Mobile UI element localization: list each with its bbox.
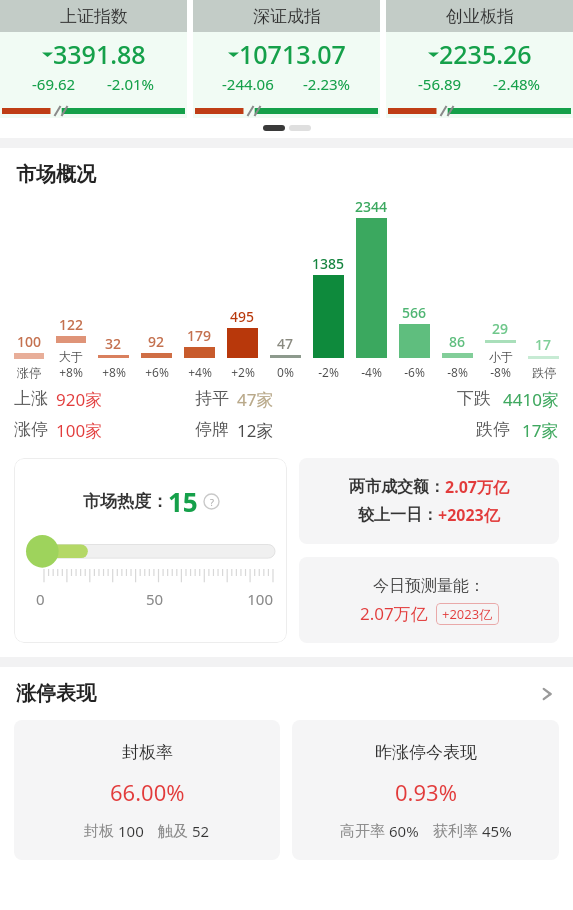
button[interactable]: 深证成指: [193, 0, 380, 118]
staticText: 86: [449, 332, 466, 351]
staticText: -2%: [318, 364, 339, 380]
staticText: 下跌: [457, 388, 491, 409]
staticText: 100: [194, 589, 273, 609]
staticText: 122: [59, 315, 84, 334]
button[interactable]: 今日预测量能：: [299, 557, 559, 643]
staticText: +8%: [59, 364, 83, 380]
staticText: 两市成交额：: [349, 477, 445, 497]
staticText: 29: [492, 319, 509, 338]
staticText: 今日预测量能：: [373, 576, 485, 596]
button[interactable]: 两市成交额：: [299, 458, 559, 544]
staticText: 涨停表现: [16, 681, 96, 706]
staticText: -8%: [447, 364, 468, 380]
staticText: 4410家: [503, 388, 559, 411]
button[interactable]: 说明: [204, 494, 219, 509]
staticText: -4%: [361, 364, 382, 380]
staticText: -2.23%: [303, 74, 351, 94]
staticText: 47家: [237, 388, 274, 411]
staticText: 10713.07: [239, 37, 346, 71]
staticText: 封板率: [122, 742, 173, 763]
staticText: 1385: [312, 254, 345, 273]
staticText: 封板: [84, 822, 114, 841]
button[interactable]: 昨涨停今表现: [292, 720, 559, 860]
staticText: 52: [192, 821, 210, 841]
staticText: 66.00%: [110, 777, 185, 807]
staticText: -6%: [404, 364, 425, 380]
staticText: 920家: [56, 388, 103, 411]
staticText: 市场热度：: [83, 491, 168, 512]
staticText: 0%: [277, 364, 294, 380]
staticText: -56.89: [418, 74, 462, 94]
staticText: +2%: [231, 364, 255, 380]
staticText: -69.62: [32, 74, 76, 94]
staticText: 0: [36, 589, 115, 609]
button[interactable]: 封板率: [14, 720, 280, 860]
staticText: 较上一日：: [358, 505, 438, 525]
staticText: 32: [105, 334, 122, 353]
staticText: 高开率: [340, 822, 385, 841]
staticText: -2.01%: [107, 74, 155, 94]
staticText: 17家: [522, 419, 559, 442]
staticText: ?: [210, 496, 214, 508]
staticText: 3391.88: [53, 37, 146, 71]
staticText: 179: [187, 326, 212, 345]
staticText: 持平: [195, 388, 229, 409]
staticText: 停牌: [195, 419, 229, 440]
staticText: 获利率: [433, 822, 478, 841]
staticText: +2023亿: [438, 504, 500, 526]
staticText: 0.93%: [395, 777, 457, 807]
staticText: 跌停: [532, 365, 556, 380]
staticText: 45%: [482, 821, 512, 841]
staticText: 495: [230, 307, 255, 326]
staticText: 17: [535, 335, 552, 354]
staticText: 100家: [56, 419, 103, 442]
staticText: 触及: [158, 822, 188, 841]
staticText: 100: [118, 821, 144, 841]
staticText: +8%: [102, 364, 126, 380]
staticText: 2.07万亿: [360, 602, 428, 625]
staticText: 12家: [237, 419, 274, 442]
staticText: 昨涨停今表现: [375, 742, 477, 763]
staticText: 深证成指: [253, 6, 321, 27]
staticText: 566: [402, 303, 427, 322]
staticText: +4%: [188, 364, 212, 380]
staticText: 涨停: [14, 419, 48, 440]
staticText: -2.48%: [493, 74, 541, 94]
staticText: 50: [115, 589, 194, 609]
staticText: +6%: [145, 364, 169, 380]
staticText: -8%: [490, 364, 511, 380]
staticText: 创业板指: [446, 6, 514, 27]
staticText: 2235.26: [439, 37, 532, 71]
staticText: 大于: [59, 349, 83, 364]
button[interactable]: 市场热度：: [14, 458, 287, 643]
staticText: 上涨: [14, 388, 48, 409]
staticText: -244.06: [222, 74, 274, 94]
staticText: 92: [148, 332, 165, 351]
staticText: +2023亿: [442, 605, 493, 623]
other: 查看更多: [539, 685, 557, 703]
staticText: 小于: [489, 349, 513, 364]
staticText: 涨停: [17, 365, 41, 380]
button[interactable]: 涨停表现: [16, 681, 557, 706]
staticText: 市场概况: [16, 162, 96, 187]
staticText: 2.07万亿: [445, 476, 509, 498]
button[interactable]: 创业板指: [386, 0, 573, 118]
staticText: 跌停: [476, 419, 510, 440]
staticText: 60%: [389, 821, 419, 841]
staticText: 15: [168, 484, 198, 519]
staticText: 100: [17, 332, 42, 351]
staticText: 2344: [355, 197, 388, 216]
button[interactable]: 上证指数: [0, 0, 187, 118]
staticText: 上证指数: [60, 6, 128, 27]
staticText: 47: [277, 334, 294, 353]
